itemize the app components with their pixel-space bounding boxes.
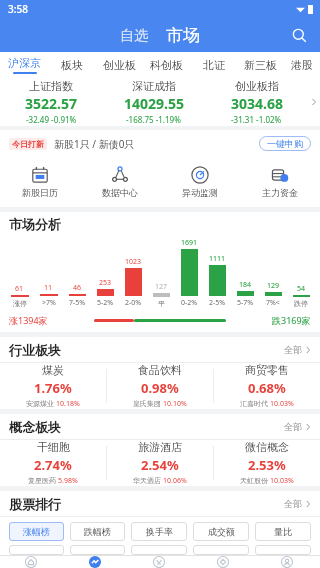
button[interactable]: 微信概念 — [214, 440, 320, 486]
staticText: 全部 — [284, 498, 302, 509]
staticText: 5-2% — [97, 298, 114, 308]
button[interactable]: 旅游酒店 — [107, 440, 213, 486]
staticText: 涨停 — [13, 299, 27, 308]
button[interactable]: 首页 — [0, 556, 64, 568]
button[interactable]: 行情 — [64, 556, 128, 568]
button[interactable]: 今日打新 — [9, 130, 311, 157]
staticText: 换手率 — [146, 526, 173, 537]
staticText: 5.98% — [58, 476, 78, 486]
staticText: 数据中心 — [102, 187, 138, 198]
button[interactable]: 港股 — [284, 52, 320, 78]
staticText: 10.03% — [270, 476, 294, 486]
staticText: 跌3169家 — [272, 314, 311, 326]
button[interactable]: 新股日历 — [0, 157, 80, 207]
staticText: 市场 — [166, 25, 200, 46]
staticText: 3034.68 — [231, 94, 283, 113]
staticText: 2.54% — [141, 456, 179, 474]
staticText: 沪深京 — [8, 56, 41, 70]
staticText: 北证 — [203, 58, 225, 72]
staticText: 253 — [99, 278, 112, 288]
button[interactable]: 一键申购 — [267, 138, 303, 149]
staticText: 行业板块 — [9, 342, 61, 358]
button[interactable]: 沪深京 — [0, 52, 48, 78]
staticText: 127 — [155, 282, 168, 292]
staticText: 0.98% — [141, 379, 179, 397]
staticText: 全部 — [284, 344, 302, 355]
button[interactable]: Search — [286, 22, 312, 48]
staticText: -31.31 -1.02% — [231, 114, 282, 125]
button[interactable]: 行业板块 — [9, 337, 311, 362]
staticText: 跌幅榜 — [84, 526, 111, 537]
button[interactable]: 我的 — [256, 556, 320, 568]
staticText: 1023 — [125, 257, 142, 267]
staticText: 新三板 — [244, 58, 277, 72]
staticText: 2.74% — [34, 456, 72, 474]
staticText: 0.68% — [248, 379, 286, 397]
button[interactable]: 上证指数 — [0, 79, 102, 125]
button[interactable]: 商贸零售 — [214, 363, 320, 409]
staticText: 11 — [44, 283, 53, 293]
button[interactable]: 涨幅榜 — [9, 522, 64, 541]
button[interactable]: 股票排行 — [9, 491, 311, 516]
staticText: 3522.57 — [25, 94, 77, 113]
button[interactable]: 干细胞 — [0, 440, 106, 486]
button[interactable]: 科创板 — [143, 52, 190, 78]
button[interactable]: 交易 — [128, 556, 192, 568]
staticText: 板块 — [61, 58, 83, 72]
staticText: 涨1394家 — [9, 314, 48, 326]
staticText: 商贸零售 — [245, 363, 289, 377]
staticText: 7%< — [266, 298, 280, 308]
staticText: 煤炭 — [42, 363, 64, 377]
staticText: 量比 — [274, 526, 292, 537]
staticText: 129 — [267, 281, 280, 291]
staticText: 10.10% — [163, 399, 187, 409]
button[interactable]: 新三板 — [237, 52, 284, 78]
button[interactable]: 商城 — [192, 556, 256, 568]
button[interactable]: 创业板 — [96, 52, 143, 78]
button[interactable]: 自选 — [114, 24, 154, 48]
staticText: 汇嘉时代 — [240, 399, 268, 408]
staticText: 皇氏集团 — [133, 399, 161, 408]
staticText: 184 — [239, 280, 252, 290]
staticText: 深证成指 — [132, 79, 176, 93]
button[interactable]: 概念板块 — [9, 414, 311, 439]
staticText: 3:58 — [8, 2, 28, 16]
button[interactable]: 深证成指 — [102, 79, 205, 125]
button[interactable]: 板块 — [48, 52, 96, 78]
staticText: 港股 — [291, 58, 313, 72]
button[interactable]: 市场 — [160, 23, 206, 48]
staticText: -32.49 -0.91% — [26, 114, 77, 125]
staticText: 7-5% — [69, 298, 86, 308]
button[interactable]: 煤炭 — [0, 363, 106, 409]
staticText: 10.18% — [56, 399, 80, 409]
staticText: 14029.55 — [124, 94, 184, 113]
staticText: 1111 — [209, 254, 226, 264]
button[interactable]: 创业板指 — [205, 79, 308, 125]
staticText: 自选 — [120, 27, 148, 45]
button[interactable]: 成交额 — [193, 522, 249, 541]
staticText: 概念板块 — [9, 419, 61, 435]
staticText: 食品饮料 — [138, 363, 182, 377]
button[interactable]: 量比 — [255, 522, 311, 541]
staticText: -168.75 -1.19% — [126, 114, 181, 125]
staticText: 安源煤业 — [26, 399, 54, 408]
button[interactable]: 跌幅榜 — [70, 522, 125, 541]
button[interactable]: 主力资金 — [240, 157, 320, 207]
staticText: 61 — [15, 284, 24, 294]
staticText: 全部 — [284, 421, 302, 432]
button[interactable]: 食品饮料 — [107, 363, 213, 409]
button[interactable]: 换手率 — [131, 522, 187, 541]
staticText: 旅游酒店 — [138, 440, 182, 454]
button[interactable]: 北证 — [190, 52, 237, 78]
button[interactable]: 数据中心 — [80, 157, 160, 207]
staticText: 2-0% — [125, 298, 142, 308]
staticText: 创业板指 — [235, 79, 279, 93]
staticText: 一键申购 — [267, 138, 303, 149]
staticText: 异动监测 — [182, 187, 218, 198]
staticText: 平 — [158, 299, 165, 308]
staticText: 2.53% — [248, 456, 286, 474]
staticText: 新股1只 / 新债0只 — [54, 137, 135, 151]
staticText: 华天酒店 — [133, 476, 161, 485]
staticText: 今日打新 — [12, 139, 44, 149]
button[interactable]: 异动监测 — [160, 157, 240, 207]
